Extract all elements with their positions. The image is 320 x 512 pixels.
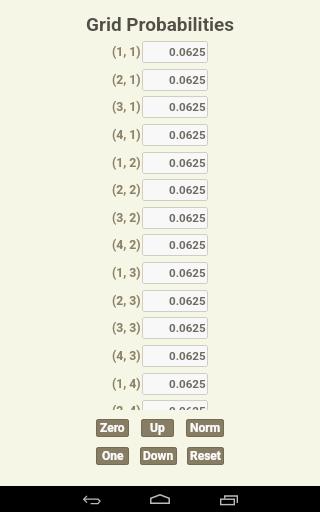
button[interactable]: 0.0625 — [142, 345, 208, 367]
button[interactable]: Home — [138, 486, 182, 512]
button[interactable]: Up — [141, 419, 174, 437]
button[interactable]: Recent apps — [206, 486, 250, 512]
button[interactable]: 0.0625 — [142, 317, 208, 339]
button[interactable]: One — [96, 447, 129, 465]
staticText: Norm — [190, 421, 221, 435]
staticText: Zero — [100, 421, 125, 435]
staticText: 0.0625 — [169, 100, 206, 114]
staticText: 0.0625 — [169, 266, 206, 280]
button[interactable]: 0.0625 — [142, 41, 208, 63]
staticText: Up — [150, 421, 165, 435]
staticText: 0.0625 — [169, 349, 206, 363]
staticText: (3, 2) — [112, 211, 141, 225]
staticText: 0.0625 — [169, 404, 206, 410]
button[interactable]: 0.0625 — [142, 207, 208, 229]
staticText: Reset — [190, 449, 221, 463]
button[interactable]: 0.0625 — [142, 373, 208, 395]
staticText: (2, 4) — [112, 404, 141, 410]
button[interactable]: 0.0625 — [142, 69, 208, 91]
staticText: (4, 2) — [112, 238, 141, 252]
staticText: (4, 3) — [112, 349, 141, 363]
button[interactable]: Norm — [186, 419, 224, 437]
staticText: Down — [143, 449, 174, 463]
button[interactable]: Down — [140, 447, 177, 465]
staticText: 0.0625 — [169, 294, 206, 308]
staticText: (3, 3) — [112, 321, 141, 335]
button[interactable]: 0.0625 — [142, 96, 208, 118]
button[interactable]: 0.0625 — [142, 262, 208, 284]
button[interactable]: 0.0625 — [142, 400, 208, 410]
staticText: 0.0625 — [169, 128, 206, 142]
staticText: 0.0625 — [169, 73, 206, 87]
staticText: (2, 1) — [112, 73, 141, 87]
staticText: (3, 1) — [112, 100, 141, 114]
staticText: (1, 1) — [112, 45, 141, 59]
button[interactable]: 0.0625 — [142, 290, 208, 312]
staticText: 0.0625 — [169, 211, 206, 225]
staticText: 0.0625 — [169, 321, 206, 335]
staticText: (1, 2) — [112, 156, 141, 170]
button[interactable]: Reset — [187, 447, 224, 465]
staticText: (4, 1) — [112, 128, 141, 142]
staticText: 0.0625 — [169, 45, 206, 59]
button[interactable]: 0.0625 — [142, 179, 208, 201]
staticText: 0.0625 — [169, 156, 206, 170]
staticText: Grid Probabilities — [86, 13, 235, 35]
staticText: 0.0625 — [169, 377, 206, 391]
button[interactable]: 0.0625 — [142, 234, 208, 256]
button[interactable]: Zero — [96, 419, 129, 437]
button[interactable]: 0.0625 — [142, 152, 208, 174]
staticText: (1, 3) — [112, 266, 141, 280]
staticText: (1, 4) — [112, 377, 141, 391]
button[interactable]: Back — [70, 486, 114, 512]
staticText: (2, 3) — [112, 294, 141, 308]
staticText: 0.0625 — [169, 183, 206, 197]
staticText: 0.0625 — [169, 238, 206, 252]
button[interactable]: 0.0625 — [142, 124, 208, 146]
staticText: (2, 2) — [112, 183, 141, 197]
staticText: One — [102, 449, 124, 463]
